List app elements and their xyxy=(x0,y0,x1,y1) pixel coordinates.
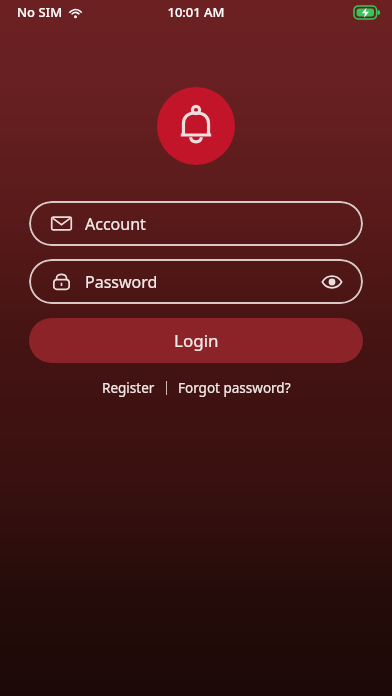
button[interactable]: Login xyxy=(29,318,363,363)
staticText: Account xyxy=(85,213,146,235)
button[interactable]: Show password xyxy=(319,269,345,295)
staticText: No SIM xyxy=(17,3,63,21)
staticText: Login xyxy=(174,329,219,352)
button[interactable]: Forgot password? xyxy=(174,377,295,399)
staticText: Forgot password? xyxy=(178,379,291,397)
button[interactable]: Account xyxy=(29,201,363,246)
staticText: Register xyxy=(102,379,155,397)
staticText: 10:01 AM xyxy=(167,3,225,21)
staticText: Password xyxy=(85,271,158,293)
button[interactable]: Register xyxy=(98,377,159,399)
button[interactable]: Password xyxy=(29,259,363,304)
